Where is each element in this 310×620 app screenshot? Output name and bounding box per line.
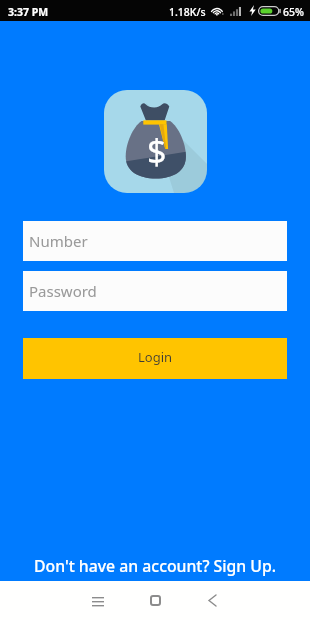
staticText: Password — [29, 281, 97, 301]
button[interactable]: Number — [23, 221, 287, 261]
button[interactable]: Password — [23, 271, 287, 311]
button[interactable]: Back — [192, 581, 232, 620]
staticText: 1.18K/s — [169, 5, 206, 19]
button[interactable]: Don't have an account? Sign Up. — [0, 555, 310, 577]
button[interactable]: Login — [23, 338, 287, 379]
staticText: 65% — [283, 5, 304, 19]
button[interactable]: Recent apps — [78, 581, 118, 620]
staticText: Don't have an account? Sign Up. — [34, 555, 277, 577]
staticText: $ — [147, 128, 167, 174]
staticText: Login — [138, 348, 173, 366]
staticText: 3:37 PM — [8, 5, 49, 19]
staticText: Number — [29, 231, 88, 251]
button[interactable]: Home — [135, 581, 175, 620]
